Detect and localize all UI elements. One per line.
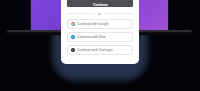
staticText: Continue with Google bbox=[77, 22, 109, 26]
button[interactable]: Google bbox=[67, 19, 133, 29]
staticText: Continue bbox=[93, 2, 108, 6]
staticText: Continue with Okta bbox=[77, 35, 106, 39]
other: Okta bbox=[71, 35, 75, 39]
other: Google bbox=[71, 22, 75, 26]
button[interactable]: OneLogin bbox=[67, 45, 133, 55]
staticText: or bbox=[98, 12, 101, 16]
button[interactable]: Continue bbox=[67, 0, 133, 7]
button[interactable]: Okta bbox=[67, 32, 133, 42]
staticText: Continue with OneLogin bbox=[77, 48, 113, 52]
other: OneLogin bbox=[71, 48, 75, 52]
